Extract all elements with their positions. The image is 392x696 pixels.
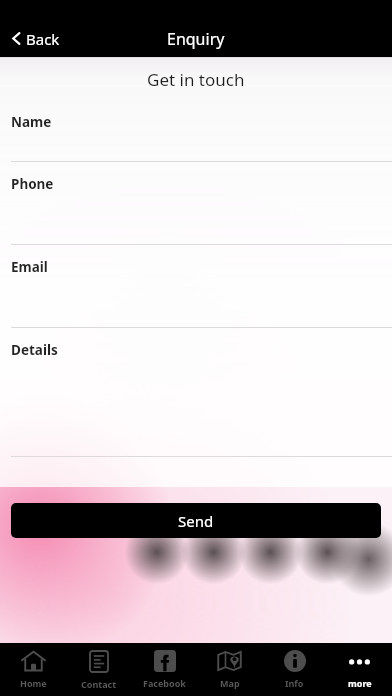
staticText: Name	[11, 113, 52, 131]
staticText: Phone	[11, 175, 54, 193]
staticText: more	[348, 677, 372, 689]
button[interactable]: Map	[197, 643, 262, 696]
staticText: Contact	[81, 678, 117, 690]
button[interactable]: Contact	[66, 643, 132, 696]
staticText: Back	[26, 29, 60, 49]
staticText: Home	[20, 677, 47, 689]
button[interactable]: Facebook	[132, 643, 197, 696]
staticText: Send	[178, 511, 214, 531]
staticText: Email	[11, 258, 48, 276]
staticText: Enquiry	[167, 28, 225, 50]
staticText: Get in touch	[147, 68, 245, 91]
button[interactable]: Home	[0, 643, 66, 696]
button[interactable]: Back	[0, 20, 74, 57]
button[interactable]: Send	[11, 503, 381, 538]
button[interactable]: more	[327, 643, 392, 696]
staticText: Info	[285, 677, 304, 689]
staticText: Map	[220, 677, 240, 689]
staticText: Details	[11, 341, 58, 359]
staticText: Facebook	[143, 677, 186, 689]
button[interactable]: Info	[262, 643, 327, 696]
